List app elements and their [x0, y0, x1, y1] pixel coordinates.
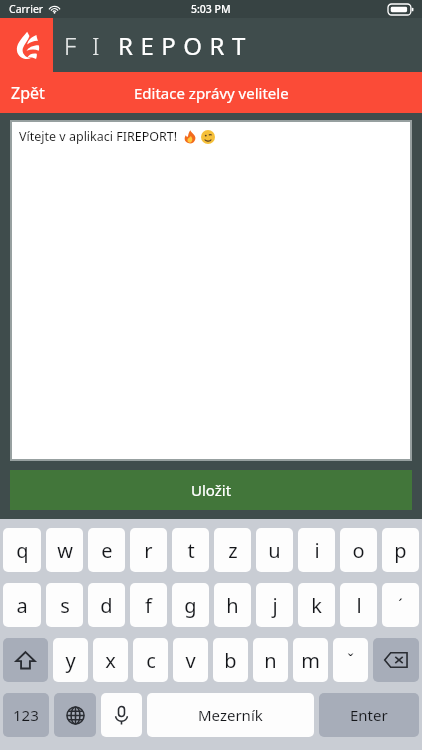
staticText: 123: [13, 705, 39, 725]
staticText: g: [184, 592, 197, 619]
staticText: r: [144, 537, 153, 564]
staticText: REPORT: [118, 29, 253, 62]
staticText: u: [268, 537, 281, 564]
button[interactable]: Mezerník: [147, 693, 314, 737]
button[interactable]: g: [172, 583, 209, 627]
button[interactable]: t: [172, 528, 209, 572]
staticText: c: [146, 647, 156, 674]
button[interactable]: n: [253, 638, 288, 682]
button[interactable]: Backspace: [373, 638, 419, 682]
staticText: f: [145, 592, 152, 619]
button[interactable]: j: [256, 583, 293, 627]
staticText: Zpět: [11, 82, 45, 104]
staticText: a: [16, 592, 28, 619]
staticText: j: [272, 592, 278, 619]
button[interactable]: k: [298, 583, 335, 627]
staticText: n: [264, 647, 277, 674]
button[interactable]: v: [173, 638, 208, 682]
button[interactable]: o: [340, 528, 377, 572]
staticText: i: [314, 537, 320, 564]
staticText: m: [301, 647, 320, 674]
staticText: h: [226, 592, 239, 619]
staticText: 5:03 PM: [191, 2, 231, 16]
staticText: Carrier: [9, 2, 44, 16]
button[interactable]: Uložit: [10, 470, 412, 510]
staticText: p: [394, 537, 407, 564]
button[interactable]: r: [130, 528, 167, 572]
button[interactable]: d: [88, 583, 125, 627]
staticText: t: [187, 537, 195, 564]
button[interactable]: a: [3, 583, 41, 627]
staticText: y: [65, 647, 76, 674]
staticText: F: [64, 29, 77, 62]
button[interactable]: Change keyboard language: [54, 693, 96, 737]
staticText: s: [60, 592, 70, 619]
button[interactable]: Shift: [3, 638, 48, 682]
button[interactable]: b: [213, 638, 248, 682]
button[interactable]: c: [133, 638, 168, 682]
button[interactable]: y: [53, 638, 88, 682]
button[interactable]: ´: [382, 583, 419, 627]
button[interactable]: u: [256, 528, 293, 572]
button[interactable]: i: [298, 528, 335, 572]
button[interactable]: Vítejte v aplikaci FIREPORT!: [12, 122, 410, 459]
staticText: x: [105, 647, 116, 674]
button[interactable]: m: [293, 638, 328, 682]
button[interactable]: Zpět: [0, 72, 56, 113]
staticText: q: [16, 537, 29, 564]
staticText: Uložit: [191, 480, 232, 500]
staticText: Editace zprávy velitele: [134, 83, 289, 103]
staticText: l: [356, 592, 362, 619]
button[interactable]: Dictate: [101, 693, 142, 737]
staticText: o: [352, 537, 365, 564]
staticText: Vítejte v aplikaci FIREPORT!: [19, 128, 178, 145]
staticText: b: [224, 647, 237, 674]
staticText: z: [228, 537, 238, 564]
staticText: e: [101, 537, 113, 564]
staticText: Enter: [350, 705, 388, 725]
button[interactable]: e: [88, 528, 125, 572]
button[interactable]: f: [130, 583, 167, 627]
staticText: I: [92, 29, 100, 62]
button[interactable]: w: [46, 528, 83, 572]
staticText: k: [311, 592, 322, 619]
button[interactable]: x: [93, 638, 128, 682]
staticText: ´: [398, 594, 403, 616]
button[interactable]: h: [214, 583, 251, 627]
button[interactable]: q: [3, 528, 41, 572]
button[interactable]: l: [340, 583, 377, 627]
staticText: w: [57, 537, 73, 564]
staticText: ˇ: [347, 649, 354, 671]
staticText: Mezerník: [198, 705, 263, 725]
button[interactable]: ˇ: [333, 638, 368, 682]
button[interactable]: s: [46, 583, 83, 627]
staticText: v: [185, 647, 196, 674]
button[interactable]: Enter: [319, 693, 419, 737]
button[interactable]: z: [214, 528, 251, 572]
staticText: d: [100, 592, 113, 619]
button[interactable]: p: [382, 528, 419, 572]
button[interactable]: 123: [3, 693, 49, 737]
